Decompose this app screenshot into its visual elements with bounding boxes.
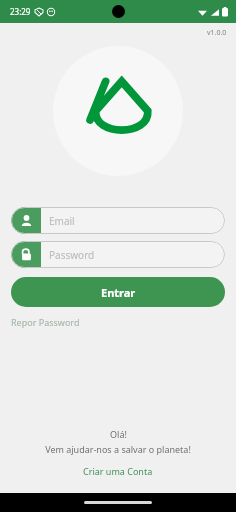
staticText: Olá! <box>110 428 127 440</box>
staticText: Entrar <box>101 285 136 300</box>
staticText: Criar uma Conta <box>83 465 153 477</box>
staticText: Password <box>49 248 95 262</box>
button[interactable]: Password <box>11 241 225 268</box>
button[interactable]: Email <box>11 207 225 234</box>
staticText: v1.0.0 <box>207 28 227 38</box>
staticText: Repor Password <box>11 316 80 328</box>
button[interactable]: Criar uma Conta <box>77 463 159 479</box>
button[interactable]: Entrar <box>11 277 225 307</box>
staticText: Vem ajudar-nos a salvar o planeta! <box>45 443 191 455</box>
staticText: Email <box>49 214 75 228</box>
staticText: 23:29 <box>10 6 31 17</box>
button[interactable]: Repor Password <box>11 314 80 330</box>
